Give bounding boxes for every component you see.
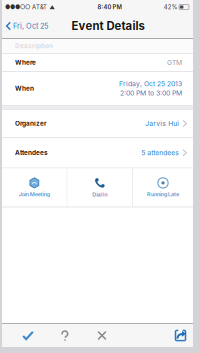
staticText: Description <box>15 42 53 50</box>
staticText: GTM <box>167 58 182 67</box>
staticText: ●●●○○ <box>5 3 30 11</box>
staticText: Friday, Oct 25 2013 <box>119 80 182 88</box>
staticText: 2:00 PM to 3:00 PM <box>120 89 182 97</box>
button[interactable]: Fri, Oct 25 <box>2 14 51 38</box>
staticText: 5 attendees <box>141 149 179 157</box>
button[interactable]: Accept <box>9 324 46 347</box>
button[interactable]: Organizer <box>2 110 193 137</box>
button[interactable]: Running Late <box>133 168 193 206</box>
staticText: Where <box>15 59 36 66</box>
button[interactable]: When <box>2 72 193 105</box>
staticText: Event Details <box>71 19 144 33</box>
staticText: Attendees <box>15 149 48 157</box>
staticText: 42% <box>164 3 178 11</box>
button[interactable]: Attendees <box>2 138 193 167</box>
staticText: 8:40 PM <box>98 3 122 11</box>
staticText: Fri, Oct 25 <box>13 22 48 30</box>
button[interactable]: Maybe <box>46 324 83 347</box>
staticText: Running Late <box>147 191 179 198</box>
button[interactable]: Join Meeting <box>2 168 67 206</box>
staticText: Organizer <box>15 120 47 127</box>
staticText: Dial In <box>92 191 107 198</box>
button[interactable]: Dial In <box>67 168 132 206</box>
button[interactable]: Share <box>164 324 196 347</box>
staticText: When <box>15 85 34 92</box>
button[interactable]: Decline <box>83 324 120 347</box>
button[interactable]: Where <box>2 54 193 71</box>
staticText: Join Meeting <box>19 191 50 198</box>
staticText: Jarvis Hui <box>145 119 179 128</box>
staticText: AT&T <box>30 3 49 11</box>
